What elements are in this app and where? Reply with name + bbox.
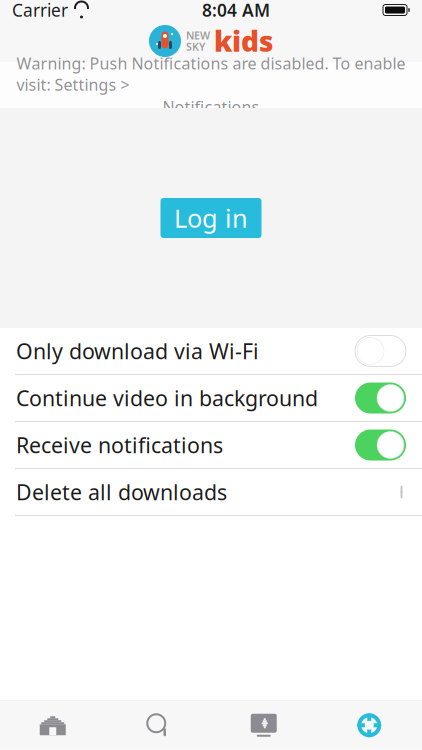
staticText: Continue video in background <box>16 384 318 412</box>
staticText: Receive notifications <box>16 431 223 459</box>
button[interactable]: Home <box>0 701 105 750</box>
staticText: Carrier <box>12 0 68 21</box>
staticText: kids <box>214 22 273 60</box>
staticText: NEW <box>186 28 210 42</box>
staticText: Log in <box>174 201 248 235</box>
staticText: SKY <box>186 39 205 54</box>
button[interactable]: Delete all downloads <box>0 469 422 515</box>
button[interactable]: Settings <box>316 701 422 750</box>
button[interactable]: Only download via Wi-Fi <box>0 328 422 374</box>
staticText: Only download via Wi-Fi <box>16 337 259 365</box>
staticText: Notifications <box>162 96 259 117</box>
button[interactable]: Continue video in background <box>0 375 422 421</box>
button[interactable]: Receive notifications <box>0 422 422 468</box>
staticText: Warning: Push Notifications are disabled… <box>16 53 405 95</box>
button[interactable]: Log in <box>160 198 261 238</box>
staticText: 8:04 AM <box>202 0 270 21</box>
button[interactable]: Videos <box>211 701 316 750</box>
button[interactable]: Search <box>105 701 211 750</box>
staticText: Delete all downloads <box>16 478 227 506</box>
